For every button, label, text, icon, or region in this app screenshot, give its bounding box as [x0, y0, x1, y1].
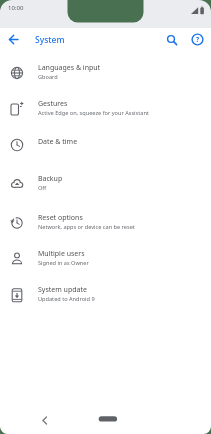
button[interactable]: ?: [189, 31, 207, 49]
staticText: Gestures: [38, 99, 68, 109]
staticText: 10:00: [8, 4, 24, 12]
button[interactable]: [94, 413, 122, 425]
button[interactable]: Gestures: [0, 90, 211, 126]
button[interactable]: [4, 30, 23, 49]
button[interactable]: Languages & input: [0, 54, 211, 90]
staticText: Backup: [38, 174, 63, 184]
staticText: Languages & input: [38, 63, 101, 73]
staticText: System update: [38, 285, 87, 295]
button[interactable]: Reset options: [0, 204, 211, 240]
staticText: Updated to Android 9: [38, 295, 95, 303]
staticText: Network, apps or device can be reset: [38, 223, 135, 231]
button[interactable]: Multiple users: [0, 240, 211, 276]
staticText: Reset options: [38, 213, 83, 223]
staticText: Gboard: [38, 73, 58, 81]
button[interactable]: System update: [0, 276, 211, 312]
button[interactable]: [34, 410, 54, 430]
staticText: Date & time: [38, 137, 78, 147]
staticText: System: [35, 34, 65, 46]
staticText: Signed in as Owner: [38, 259, 89, 267]
staticText: Off: [38, 184, 47, 192]
staticText: ?: [196, 35, 200, 44]
button[interactable]: Backup: [0, 165, 211, 201]
button[interactable]: Date & time: [0, 126, 211, 162]
staticText: Active Edge on, squeeze for your Assista…: [38, 109, 149, 117]
button[interactable]: [163, 31, 181, 49]
staticText: Multiple users: [38, 249, 85, 259]
